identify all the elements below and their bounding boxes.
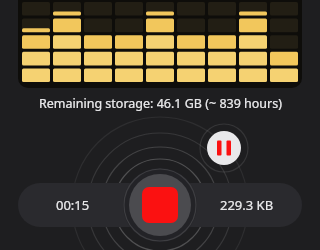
staticText: 00:15 — [56, 196, 90, 214]
button[interactable]: 00:15 — [18, 183, 128, 227]
button[interactable]: Pause recording — [205, 129, 243, 167]
staticText: Remaining storage: 46.1 GB (~ 839 hours) — [39, 95, 282, 112]
button[interactable]: 229.3 KB — [192, 183, 302, 227]
button[interactable]: Stop recording — [128, 173, 192, 237]
staticText: 229.3 KB — [220, 196, 274, 214]
